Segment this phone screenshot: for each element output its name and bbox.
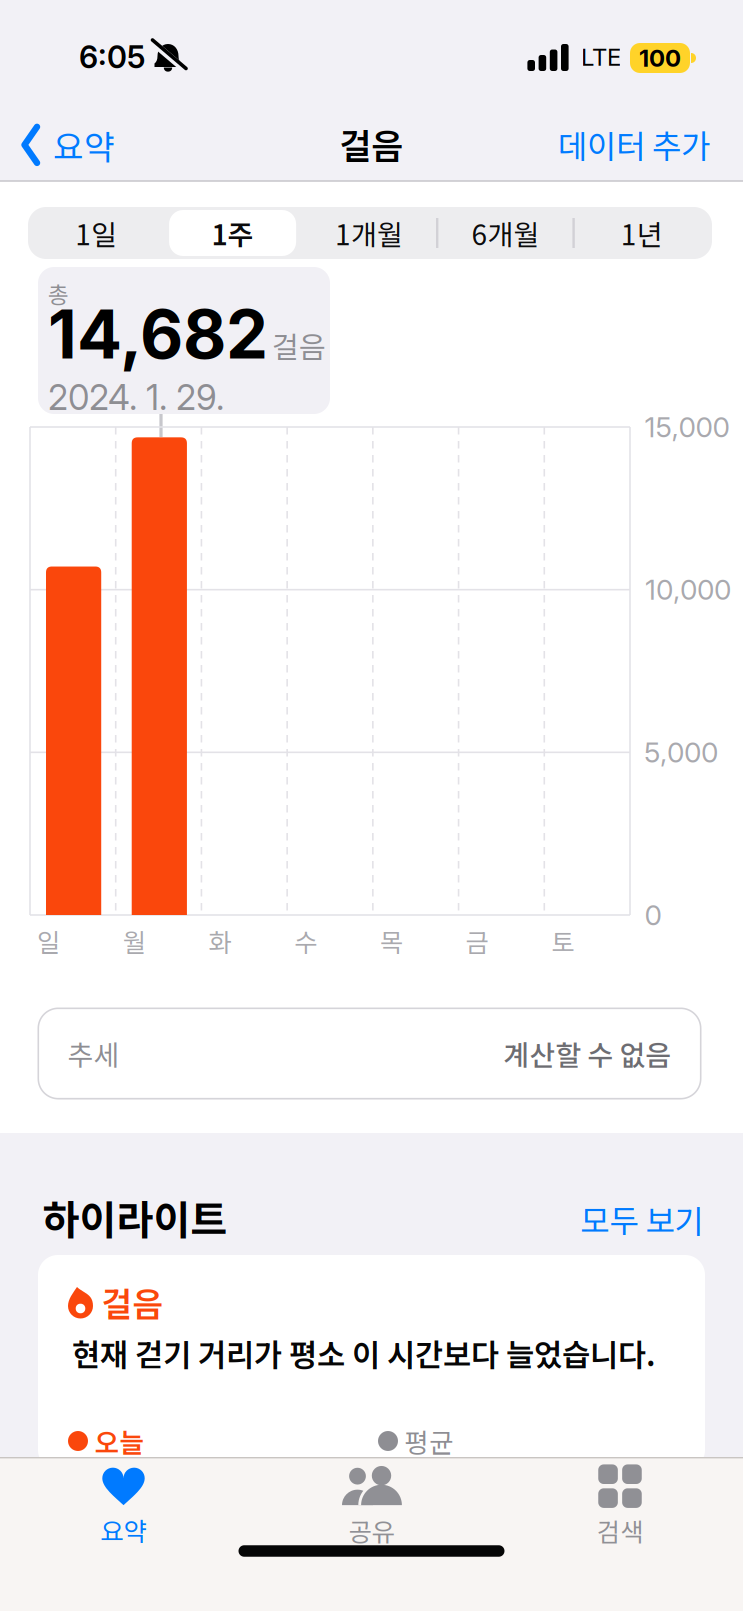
staticText: 요약 [53, 121, 115, 169]
button[interactable]: 1주 [168, 208, 298, 258]
button[interactable]: 1일 [31, 208, 161, 258]
staticText: 일 [37, 923, 60, 959]
staticText: 1년 [621, 213, 663, 253]
button[interactable]: 1년 [577, 208, 707, 258]
staticText: 5,000 [644, 735, 718, 769]
staticText: 수 [294, 923, 317, 959]
staticText: 2024. 1. 29. [48, 376, 224, 418]
staticText: 14,682 [48, 294, 268, 374]
staticText: 목 [380, 923, 403, 959]
button[interactable]: 모두 보기 [580, 1196, 703, 1242]
staticText: 토 [551, 923, 574, 959]
staticText: 요약 [100, 1512, 146, 1548]
button[interactable]: 1개월 [304, 208, 434, 258]
staticText: 0 [644, 898, 661, 932]
staticText: 현재 걷기 거리가 평소 이 시간보다 늘었습니다. [72, 1331, 656, 1375]
button[interactable]: 추세 [37, 1007, 701, 1099]
staticText: 검색 [597, 1512, 643, 1549]
button[interactable]: 공유 [341, 1467, 401, 1549]
staticText: LTE [581, 42, 621, 71]
staticText: 걸음 [272, 324, 326, 366]
staticText: 1주 [212, 213, 254, 253]
staticText: 6개월 [471, 213, 539, 253]
staticText: 걸음 [101, 1278, 163, 1326]
staticText: 10,000 [645, 573, 731, 607]
button[interactable]: 검색 [597, 1467, 643, 1549]
staticText: 15,000 [644, 410, 729, 444]
staticText: 하이라이트 [42, 1188, 227, 1246]
staticText: 월 [123, 923, 146, 959]
staticText: 총 [48, 277, 69, 310]
staticText: 100 [639, 43, 681, 72]
staticText: 걸음 [339, 119, 403, 169]
button[interactable]: 뒤로, 요약 [22, 121, 117, 169]
button[interactable]: 데이터 추가 [558, 121, 710, 167]
button[interactable]: 6개월 [440, 208, 570, 258]
button[interactable]: 요약 [100, 1468, 146, 1548]
staticText: 1일 [75, 213, 117, 253]
staticText: 추세 [67, 1033, 119, 1074]
staticText: 오늘 [94, 1422, 144, 1460]
button[interactable]: 걸음 [38, 1255, 705, 1470]
staticText: 모두 보기 [580, 1196, 703, 1242]
staticText: 공유 [348, 1512, 394, 1549]
staticText: 1개월 [335, 213, 403, 253]
staticText: 데이터 추가 [558, 121, 710, 167]
staticText: 6:05 [79, 38, 145, 75]
staticText: 계산할 수 없음 [503, 1033, 671, 1074]
staticText: 금 [466, 923, 489, 959]
staticText: 화 [208, 923, 231, 959]
staticText: 평균 [404, 1422, 454, 1460]
